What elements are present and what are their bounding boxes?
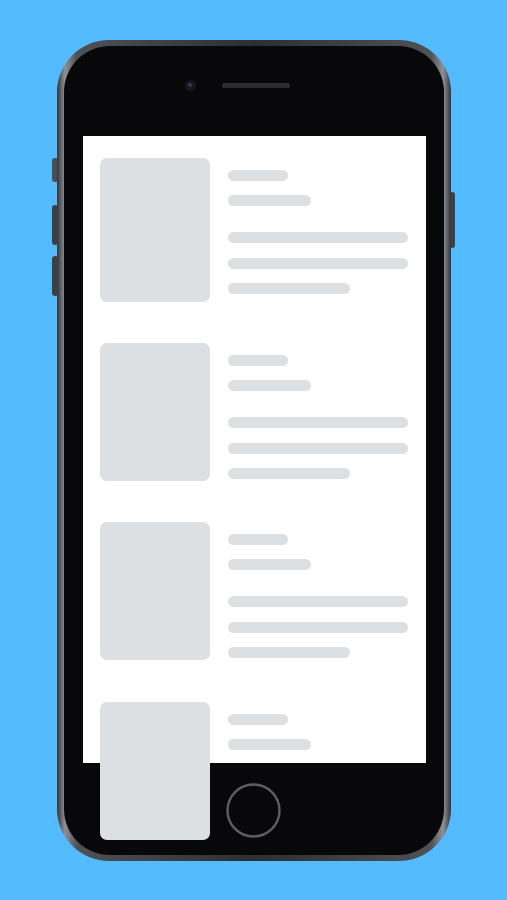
button[interactable] (100, 702, 210, 840)
button[interactable]: Volume up (52, 205, 58, 245)
button[interactable]: Home (226, 783, 281, 838)
button[interactable]: Volume down (52, 256, 58, 296)
button[interactable]: Silent switch (52, 158, 58, 182)
button[interactable]: Power (449, 192, 455, 248)
